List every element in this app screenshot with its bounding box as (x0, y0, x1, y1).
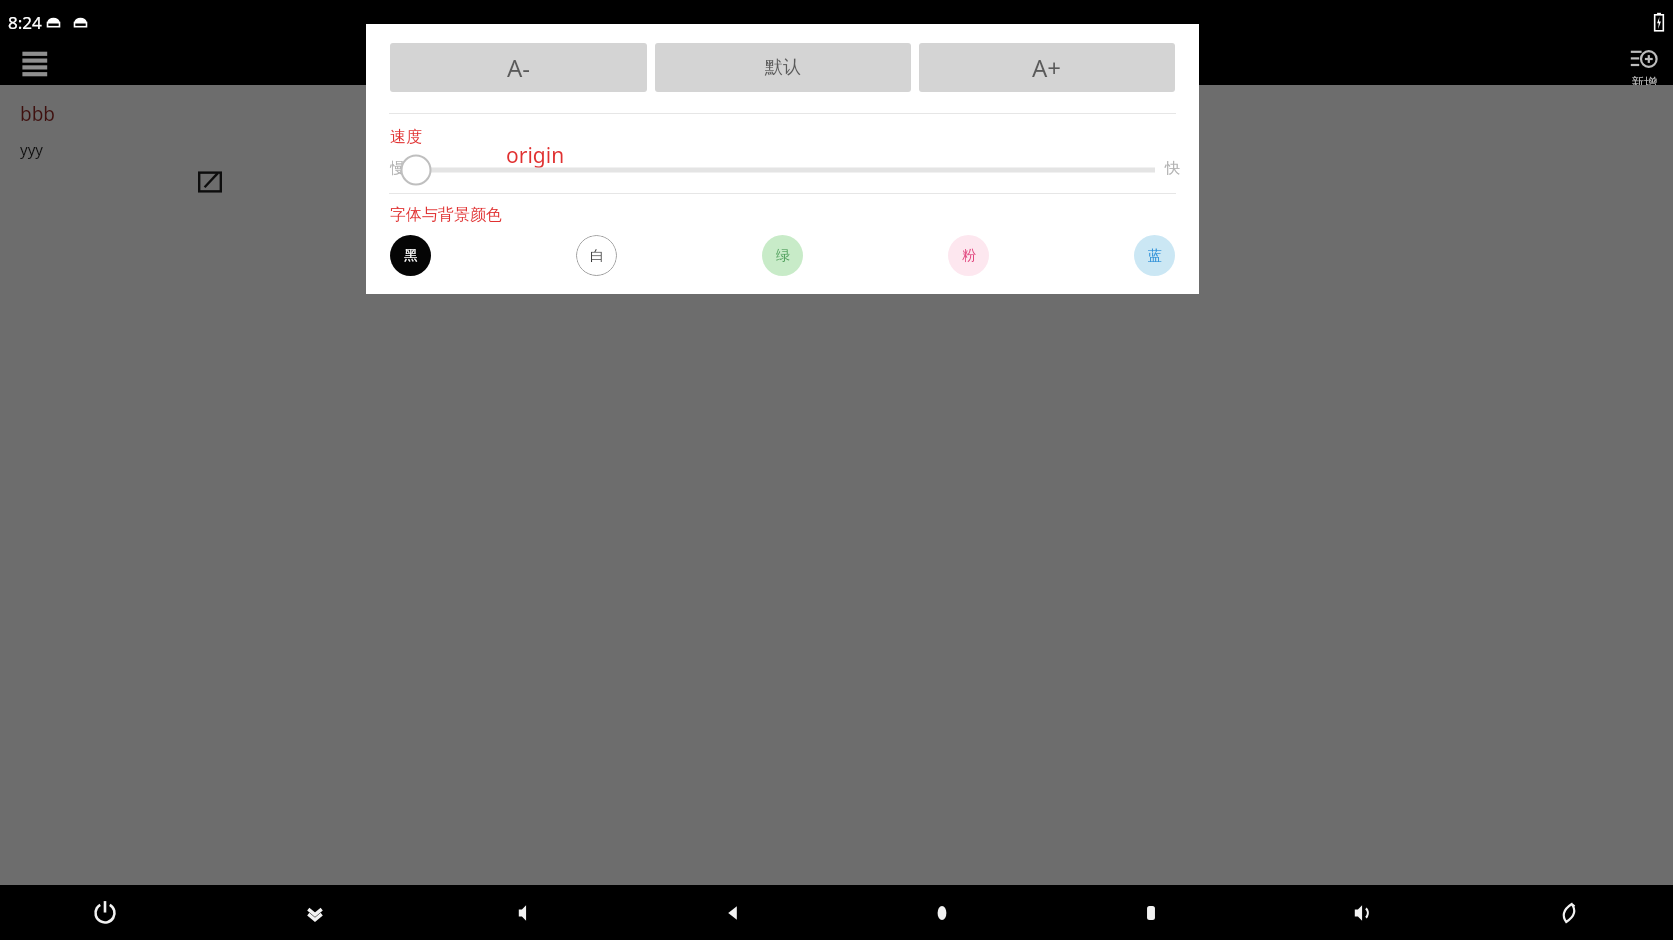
button[interactable]: Speed (406, 147, 1155, 189)
staticText: 速度 (390, 127, 422, 147)
button[interactable]: Volume up (1255, 885, 1464, 940)
button[interactable]: Edit (195, 169, 225, 195)
button[interactable]: Edit (1031, 169, 1061, 195)
button[interactable]: 123 (849, 95, 1243, 195)
staticText: 快 (1165, 159, 1180, 178)
staticText: A- (507, 51, 531, 84)
staticText: yyy (20, 139, 43, 159)
staticText: 黑 (404, 247, 418, 265)
staticText: origin (506, 141, 565, 170)
button[interactable]: 白 (576, 235, 617, 276)
button[interactable]: 默认 (655, 43, 911, 92)
button[interactable]: Power (0, 885, 210, 940)
staticText: 字体与背景颜色 (390, 205, 502, 225)
button[interactable]: Back (628, 885, 837, 940)
button[interactable]: Volume down (419, 885, 628, 940)
button[interactable]: Menu (20, 45, 60, 85)
button[interactable]: 黑 (390, 235, 431, 276)
button[interactable]: ghhh (431, 95, 825, 195)
staticText: 8:24 (8, 11, 42, 34)
button[interactable]: A+ (919, 43, 1175, 92)
button[interactable]: 绿 (762, 235, 803, 276)
staticText: 白 (590, 247, 604, 265)
staticText: 绿 (776, 247, 790, 265)
staticText: A+ (1032, 51, 1062, 84)
staticText: ghhh (439, 101, 486, 127)
staticText: 123 (857, 101, 890, 127)
button[interactable]: Collapse (210, 885, 419, 940)
staticText: 粉 (962, 247, 976, 265)
button[interactable]: Home (837, 885, 1046, 940)
button[interactable]: A- (390, 43, 647, 92)
button[interactable]: Edit (613, 169, 643, 195)
button[interactable]: 粉 (948, 235, 989, 276)
staticText: 新增 (1631, 74, 1657, 85)
staticText: 蓝 (1148, 247, 1162, 265)
button[interactable]: Rotate (1464, 885, 1673, 940)
staticText: bbb (20, 101, 56, 127)
button[interactable]: 蓝 (1134, 235, 1175, 276)
button[interactable]: Add (1629, 44, 1659, 85)
button[interactable]: bbb (12, 95, 407, 195)
staticText: 默认 (765, 56, 801, 79)
button[interactable]: Recents (1046, 885, 1255, 940)
staticText: 慢 (390, 159, 405, 178)
